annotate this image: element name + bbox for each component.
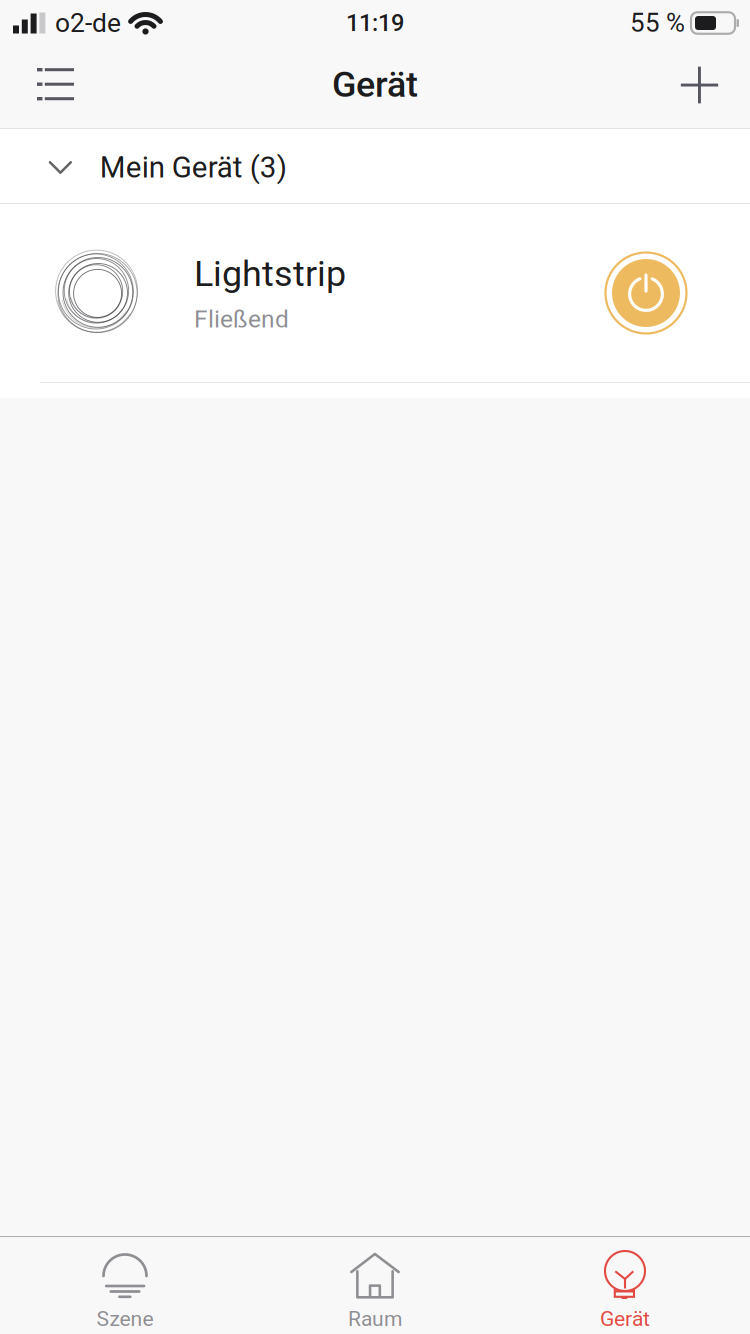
button[interactable]: Add device: [662, 46, 737, 128]
staticText: Fließend: [194, 305, 289, 333]
staticText: o2-de: [55, 7, 121, 38]
button[interactable]: Gerät: [500, 1237, 750, 1334]
staticText: Raum: [348, 1306, 402, 1331]
button[interactable]: Power: [605, 204, 687, 382]
button[interactable]: Raum: [250, 1237, 500, 1334]
button[interactable]: Lightstrip: [0, 204, 605, 382]
button[interactable]: Szene: [0, 1237, 250, 1334]
button[interactable]: Menu: [18, 46, 93, 128]
staticText: Gerät: [332, 63, 418, 105]
staticText: 55 %: [630, 8, 685, 38]
staticText: Szene: [96, 1306, 153, 1331]
staticText: Mein Gerät (3): [100, 150, 287, 185]
staticText: 11:19: [346, 9, 404, 37]
button[interactable]: Mein Gerät (3): [0, 129, 750, 203]
staticText: Gerät: [600, 1306, 650, 1331]
staticText: Lightstrip: [194, 253, 346, 295]
